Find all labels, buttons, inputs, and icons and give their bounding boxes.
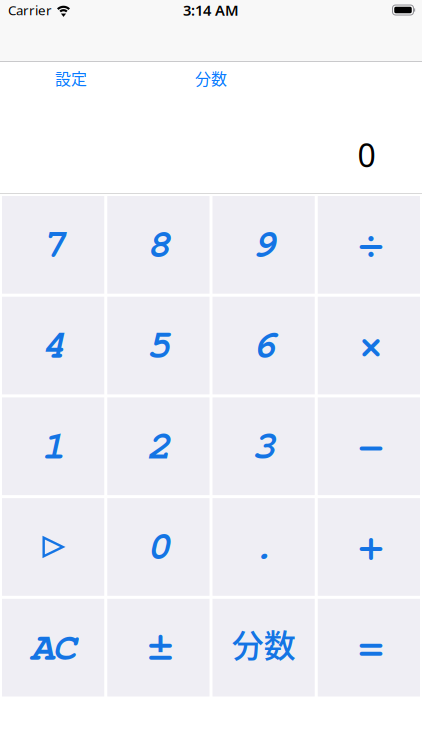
staticText: 3	[252, 415, 276, 469]
staticText: 3:14 AM	[183, 0, 239, 20]
staticText: 7	[41, 214, 65, 268]
button[interactable]: 4	[2, 297, 104, 394]
button[interactable]: 設定	[55, 66, 87, 90]
staticText: =	[357, 616, 381, 671]
staticText: Carrier	[8, 1, 52, 19]
staticText: −	[357, 415, 381, 469]
staticText: 分数	[232, 620, 296, 667]
staticText: 設定	[55, 66, 87, 90]
staticText: 5	[146, 314, 170, 369]
button[interactable]: 2	[107, 397, 209, 495]
staticText: 分数	[195, 66, 227, 90]
staticText: 0	[357, 133, 375, 176]
button[interactable]: 8	[107, 196, 209, 294]
button[interactable]: ÷	[318, 196, 420, 294]
button[interactable]: .	[212, 498, 315, 596]
button[interactable]: 5	[107, 297, 209, 394]
staticText: ×	[357, 314, 381, 369]
button[interactable]: =	[318, 599, 420, 696]
button[interactable]: Play	[2, 498, 104, 596]
button[interactable]: ±	[107, 599, 209, 696]
button[interactable]: 0	[107, 498, 209, 596]
staticText: ÷	[357, 214, 381, 268]
button[interactable]: 分数	[195, 66, 227, 90]
staticText: 4	[41, 314, 65, 369]
staticText: ±	[146, 616, 170, 671]
button[interactable]: 分数	[212, 599, 315, 696]
staticText: 8	[146, 214, 170, 268]
button[interactable]: 1	[2, 397, 104, 495]
staticText: 9	[252, 214, 276, 268]
staticText: 2	[146, 415, 170, 469]
staticText: +	[357, 516, 381, 570]
button[interactable]: ×	[318, 297, 420, 394]
staticText: 1	[41, 415, 65, 469]
button[interactable]: 9	[212, 196, 315, 294]
staticText: 6	[252, 314, 276, 369]
staticText: 0	[146, 516, 170, 570]
button[interactable]: −	[318, 397, 420, 495]
button[interactable]: AC	[2, 599, 104, 696]
button[interactable]: +	[318, 498, 420, 596]
staticText: AC	[30, 616, 76, 671]
staticText: .	[252, 516, 276, 570]
button[interactable]: 7	[2, 196, 104, 294]
button[interactable]: 6	[212, 297, 315, 394]
button[interactable]: 3	[212, 397, 315, 495]
